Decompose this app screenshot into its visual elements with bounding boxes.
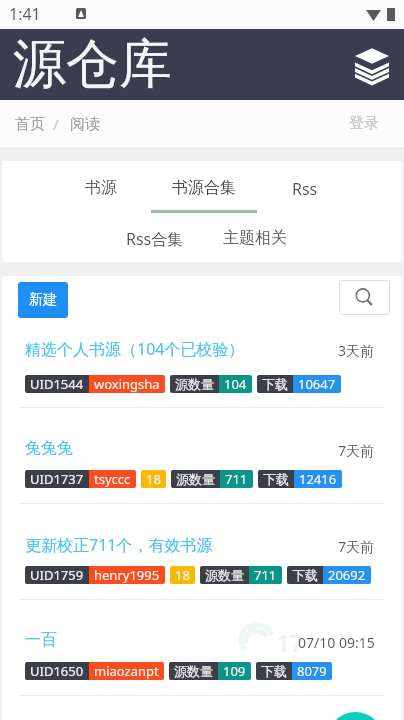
staticText: 17 [276,626,304,659]
button[interactable]: 新建 [18,282,68,318]
button[interactable]: Rss合集 [102,214,208,262]
staticText: 源数量 [205,567,244,583]
staticText: 书源 [85,178,117,198]
staticText: 109 [223,662,246,680]
staticText: 10647 [298,375,336,393]
button[interactable]: 主题相关 [202,214,308,262]
staticText: Rss [292,178,318,200]
staticText: 精选个人书源（104个已校验） [25,338,245,360]
button[interactable]: 兔兔兔 [2,408,402,504]
button[interactable]: Search [339,280,390,315]
staticText: UID1759 [30,566,84,584]
staticText: 主题相关 [223,228,287,248]
staticText: 18 [175,566,190,584]
button[interactable]: 书源合集 [151,161,257,214]
staticText: 源仓库 [13,31,172,98]
staticText: 711 [225,470,248,488]
staticText: 下载 [262,376,288,392]
staticText: 兔兔兔 [25,438,73,458]
staticText: 07/10 09:15 [298,633,375,652]
staticText: 20692 [328,566,366,584]
staticText: 源数量 [174,663,213,679]
staticText: 7天前 [338,537,375,556]
button[interactable]: Scroll to top [328,712,383,720]
staticText: 新建 [29,291,57,309]
button[interactable]: Layers [350,43,394,87]
button[interactable]: 精选个人书源（104个已校验） [2,318,402,408]
staticText: 1:41 [9,3,41,25]
staticText: miaozanpt [94,662,159,680]
staticText: 104 [224,375,247,393]
staticText: 书源合集 [172,178,236,198]
staticText: 源数量 [175,376,214,392]
staticText: Rss合集 [126,228,184,250]
staticText: 8079 [297,662,327,680]
staticText: UID1737 [30,470,84,488]
button[interactable]: 更新校正711个，有效书源 [2,504,402,600]
staticText: henry1995 [94,566,160,584]
staticText: 下载 [263,471,289,487]
staticText: 3天前 [338,341,375,360]
button[interactable]: 一百 [2,600,402,696]
staticText: 711 [254,566,277,584]
staticText: / [53,114,59,134]
staticText: 18 [146,470,161,488]
staticText: 源数量 [176,471,215,487]
button[interactable]: 书源 [48,161,154,214]
staticText: 下载 [292,567,318,583]
button[interactable]: Rss [252,161,358,214]
staticText: UID1650 [30,662,84,680]
staticText: 7天前 [338,441,375,460]
staticText: woxingsha [94,375,160,393]
button[interactable]: 登录 [349,114,379,133]
staticText: 下载 [261,663,287,679]
staticText: tsyccc [94,470,131,488]
staticText: 更新校正711个，有效书源 [25,534,213,556]
staticText: 12416 [299,470,337,488]
button[interactable]: 阅读 [70,115,100,134]
staticText: 一百 [25,630,57,650]
button[interactable]: 首页 [15,115,45,134]
staticText: UID1544 [30,375,84,393]
